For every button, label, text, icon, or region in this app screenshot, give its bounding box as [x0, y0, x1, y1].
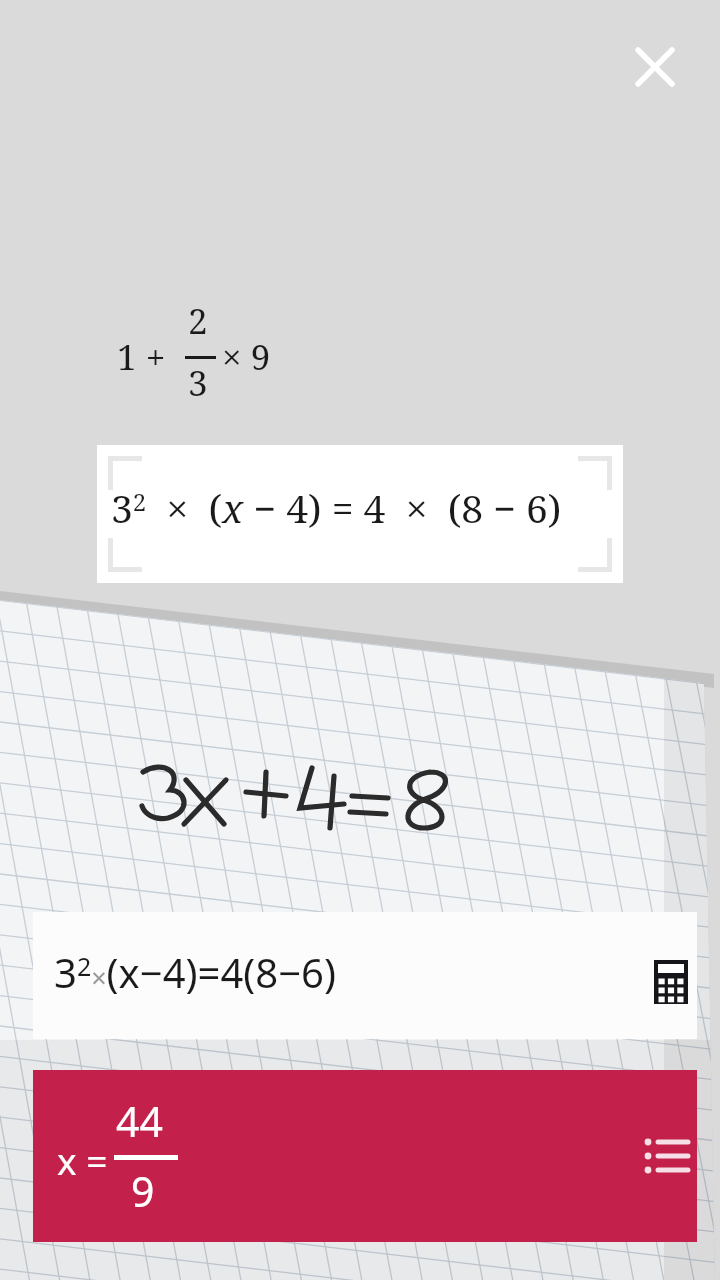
button[interactable]: x = — [33, 1070, 697, 1242]
button[interactable]: Show steps — [629, 1125, 709, 1189]
button[interactable]: 32 × (x − 4) = 4 × (8 − 6) — [97, 445, 623, 583]
button[interactable]: Calculator — [633, 948, 711, 1018]
staticText: 44 — [116, 1093, 163, 1149]
staticText: 32 × (x − 4) = 4 × (8 − 6) — [111, 481, 562, 534]
staticText: x = — [57, 1135, 108, 1185]
staticText: 9 — [131, 1163, 155, 1219]
button[interactable]: 32×(x−4)=4(8−6) — [33, 912, 697, 1039]
staticText: 3 — [188, 359, 208, 407]
staticText: × 9 — [222, 333, 271, 381]
staticText: 32×(x−4)=4(8−6) — [54, 945, 336, 999]
staticText: 1 + — [117, 333, 166, 381]
button[interactable]: Close — [611, 23, 699, 111]
staticText: 2 — [188, 297, 208, 345]
